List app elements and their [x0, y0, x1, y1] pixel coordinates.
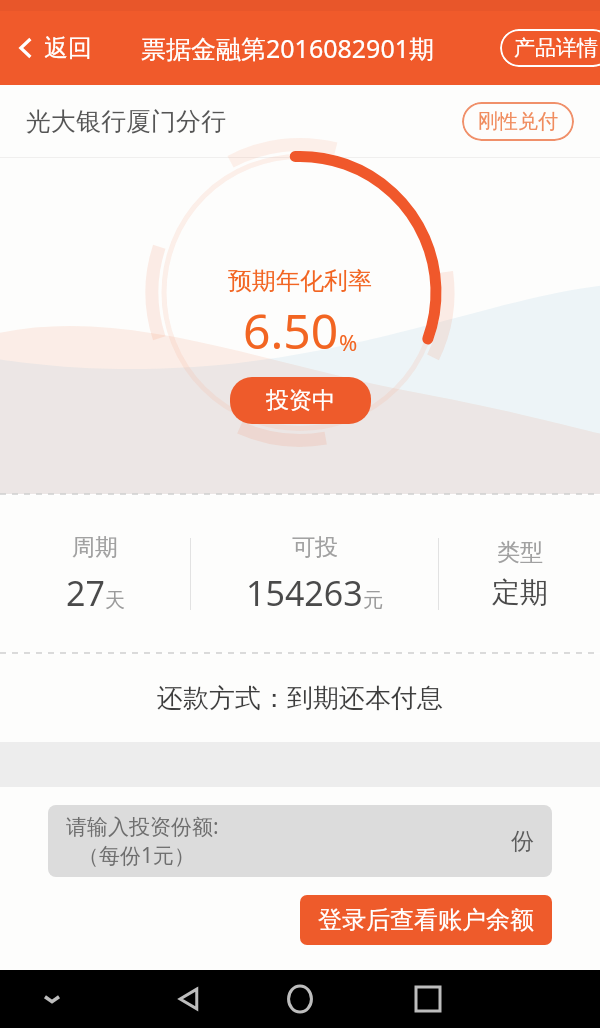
- staticText: （每份1元）: [78, 841, 196, 870]
- staticText: %: [339, 327, 358, 357]
- button[interactable]: 请输入投资份额:: [48, 805, 552, 877]
- button[interactable]: Recents: [401, 972, 455, 1026]
- staticText: 产品详情: [514, 35, 598, 61]
- staticText: 27: [66, 570, 105, 616]
- staticText: 份: [511, 827, 534, 856]
- button[interactable]: 投资中: [230, 377, 371, 424]
- staticText: 周期: [72, 533, 118, 562]
- staticText: 登录后查看账户余额: [318, 905, 534, 935]
- staticText: 154263: [246, 570, 363, 616]
- button[interactable]: Back: [163, 972, 217, 1026]
- staticText: 天: [105, 588, 125, 613]
- button[interactable]: Hide keyboard: [28, 975, 76, 1023]
- button[interactable]: 登录后查看账户余额: [300, 895, 552, 945]
- button[interactable]: 刚性兑付: [462, 102, 574, 141]
- button[interactable]: Home: [273, 972, 327, 1026]
- staticText: 还款方式：到期还本付息: [157, 682, 443, 715]
- staticText: 定期: [492, 575, 548, 610]
- staticText: 元: [363, 588, 383, 613]
- staticText: 6.50: [243, 298, 339, 363]
- staticText: 类型: [497, 538, 543, 567]
- staticText: 返回: [44, 33, 92, 63]
- staticText: 光大银行厦门分行: [26, 106, 226, 137]
- button[interactable]: 返回: [8, 27, 100, 69]
- staticText: 票据金融第2016082901期: [141, 31, 435, 65]
- staticText: 投资中: [266, 386, 335, 415]
- staticText: 可投: [292, 533, 338, 562]
- staticText: 请输入投资份额:: [66, 812, 219, 841]
- staticText: 预期年化利率: [228, 266, 372, 296]
- staticText: 刚性兑付: [478, 109, 558, 134]
- button[interactable]: 产品详情: [500, 29, 600, 67]
